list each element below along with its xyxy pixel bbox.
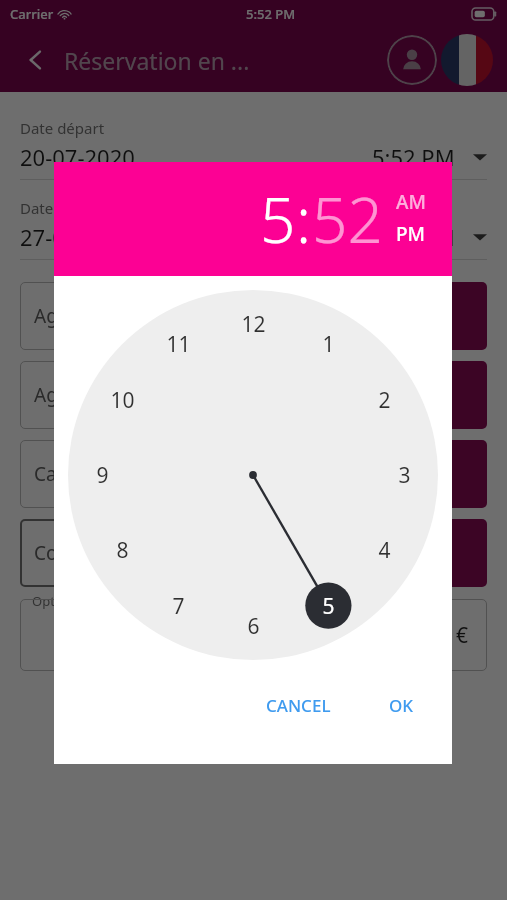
staticText: 9 [96,461,109,490]
button[interactable]: Options [20,599,487,671]
button[interactable]: Commentaire [20,519,433,587]
button[interactable]: 9 [79,452,125,498]
staticText: 8 [116,536,129,565]
staticText: Carrier [10,5,54,23]
button[interactable]: 12 [230,301,276,347]
button[interactable]: 4 [361,527,407,573]
button[interactable]: 2 [361,377,407,423]
staticText: 3 [398,461,411,490]
staticText: OK [389,694,414,717]
staticText: : [296,177,312,261]
button[interactable]: AM [396,189,426,215]
button[interactable]: 11 [155,321,201,367]
staticText: Options [32,592,81,610]
staticText: 1 [322,330,335,359]
button[interactable]: 3 [381,452,427,498]
staticText: Agence départ [34,303,165,329]
staticText: Date retour [20,198,102,218]
button[interactable]: Agence départ [20,282,433,350]
staticText: 5 [322,592,335,621]
button[interactable]: CANCEL [256,686,341,725]
button[interactable]: 6 [230,603,276,649]
button[interactable]: Agence retour [20,361,433,429]
button[interactable]: Account [387,35,437,85]
staticText: Date départ [20,118,105,138]
staticText: 5:52 PM [372,142,455,172]
button[interactable]: Open Commentaire [441,519,487,587]
staticText: CANCEL [266,694,331,717]
button[interactable]: 1 [305,321,351,367]
staticText: PM [396,221,426,247]
staticText: 2 [378,386,391,415]
staticText: Agence retour [34,382,162,408]
staticText: 5 [260,177,296,261]
button[interactable]: Open Catégorie [441,440,487,508]
staticText: Catégorie [34,461,121,487]
staticText: 52 [312,177,383,261]
staticText: € [456,621,469,650]
staticText: AM [396,189,426,215]
button[interactable]: Open Agence retour [441,361,487,429]
button[interactable]: PM [396,221,426,247]
button[interactable]: OK [379,686,424,725]
button[interactable]: 10 [99,377,145,423]
staticText: 27-07-2020 [20,222,135,252]
staticText: 12 [241,310,266,339]
button[interactable]: Catégorie [20,440,433,508]
button[interactable]: 7 [155,583,201,629]
button[interactable]: 5 [305,583,351,629]
staticText: 11 [166,330,191,359]
button[interactable]: Open Agence départ [441,282,487,350]
staticText: Commentaire [34,540,157,566]
staticText: 5:52 PM [372,222,455,252]
staticText: Réservation en ... [64,45,250,76]
button[interactable]: Back [14,38,58,82]
staticText: 4 [378,536,391,565]
staticText: 20-07-2020 [20,142,135,172]
staticText: 10 [110,386,135,415]
staticText: 6 [247,612,260,641]
button[interactable]: Language [441,34,493,86]
button[interactable]: 8 [99,527,145,573]
staticText: 5:52 PM [246,5,296,23]
staticText: 7 [172,592,185,621]
